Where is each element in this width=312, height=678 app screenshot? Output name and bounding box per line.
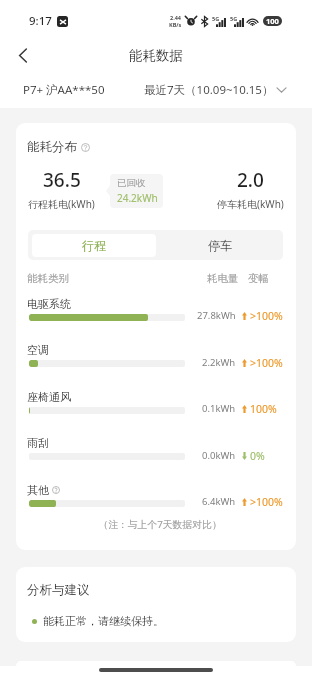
staticText: 最近7天（10.09~10.15） (144, 82, 274, 98)
staticText: 座椅通风 (27, 390, 71, 404)
staticText: KB/s (169, 21, 182, 28)
button[interactable]: 最近7天（10.09~10.15） (140, 79, 290, 101)
staticText: >100% (250, 309, 283, 323)
staticText: 6.4kWh (202, 495, 236, 508)
button[interactable]: Back (10, 42, 36, 68)
staticText: 2.0 (237, 167, 264, 193)
button[interactable]: 行程 (32, 234, 156, 257)
staticText: 雨刮 (27, 436, 49, 450)
staticText: 27.8kWh (197, 309, 236, 322)
staticText: 电驱系统 (27, 297, 71, 311)
button[interactable]: P7+ 沪AA***50 (19, 79, 109, 101)
staticText: 能耗正常，请继续保持。 (43, 614, 164, 628)
button[interactable]: 停车 (156, 230, 283, 260)
staticText: 24.2kWh (117, 191, 158, 205)
staticText: 分析与建议 (27, 582, 90, 598)
staticText: 耗电量 (207, 272, 239, 285)
staticText: 停车 (208, 238, 232, 253)
staticText: 能耗数据 (129, 47, 183, 64)
staticText: 0.1kWh (202, 402, 236, 415)
staticText: 2.44 (170, 14, 181, 21)
staticText: 能耗类别 (27, 272, 69, 285)
staticText: 2.2kWh (202, 356, 236, 369)
staticText: 已回收 (117, 177, 146, 189)
staticText: 停车耗电(kWh) (217, 197, 284, 211)
staticText: 100% (250, 402, 277, 416)
staticText: 9:17 (29, 13, 52, 29)
staticText: >100% (250, 356, 283, 370)
staticText: 空调 (27, 343, 49, 357)
staticText: 变幅 (248, 272, 269, 285)
staticText: 能耗分布 (27, 139, 77, 155)
staticText: 其他 (27, 483, 49, 497)
staticText: （注：与上个7天数据对比） (20, 518, 296, 531)
staticText: >100% (250, 495, 283, 509)
staticText: 行程耗电(kWh) (28, 197, 95, 211)
staticText: 5G (230, 15, 238, 22)
staticText: 36.5 (43, 167, 81, 193)
staticText: 行程 (82, 238, 106, 253)
staticText: 5G (212, 15, 220, 22)
staticText: 0.0kWh (202, 449, 236, 462)
staticText: 100 (266, 16, 279, 26)
staticText: P7+ 沪AA***50 (23, 82, 105, 98)
staticText: 0% (250, 449, 265, 463)
